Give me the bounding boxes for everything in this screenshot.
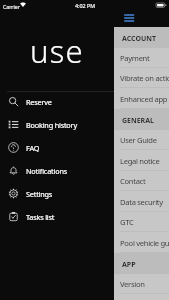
- staticText: APP: [122, 260, 136, 270]
- button[interactable]: Vibrate on action: [114, 68, 169, 88]
- staticText: Booking history: [26, 120, 77, 130]
- staticText: Carrier: [3, 3, 20, 10]
- staticText: Payment: [120, 53, 150, 63]
- staticText: Tasks list: [26, 212, 55, 222]
- staticText: FAQ: [26, 143, 40, 153]
- button[interactable]: Contact: [114, 171, 169, 191]
- staticText: Version: [120, 279, 145, 289]
- staticText: GTC: [120, 217, 134, 227]
- staticText: Contact: [120, 176, 146, 186]
- staticText: User Guide: [120, 135, 157, 145]
- button[interactable]: GTC: [114, 212, 169, 232]
- button[interactable]: Version: [114, 274, 169, 294]
- staticText: Reserve: [26, 97, 52, 107]
- button[interactable]: Enhanced app security: [114, 88, 169, 109]
- staticText: ACCOUNT: [122, 34, 156, 44]
- staticText: use: [30, 30, 84, 72]
- staticText: Settings: [26, 189, 53, 199]
- staticText: Enhanced app security: [120, 94, 169, 104]
- button[interactable]: Notifications: [0, 159, 114, 182]
- staticText: Data security: [120, 197, 163, 207]
- staticText: Vibrate on action: [120, 73, 169, 83]
- button[interactable]: Legal notice: [114, 150, 169, 171]
- staticText: Pool vehicle guide: [120, 238, 169, 248]
- button[interactable]: Settings: [0, 182, 114, 205]
- button[interactable]: FAQ: [0, 136, 114, 159]
- staticText: Notifications: [26, 166, 68, 176]
- staticText: 4:02 PM: [75, 2, 96, 9]
- button[interactable]: Tasks list: [0, 205, 114, 228]
- button[interactable]: Booking history: [0, 113, 114, 136]
- button[interactable]: User Guide: [114, 130, 169, 150]
- button[interactable]: Payment: [114, 48, 169, 68]
- button[interactable]: Data security: [114, 191, 169, 212]
- button[interactable]: Reserve: [0, 90, 114, 113]
- button[interactable]: Pool vehicle guide: [114, 232, 169, 253]
- staticText: GENERAL: [122, 116, 154, 126]
- button[interactable]: Open navigation menu: [121, 10, 137, 25]
- staticText: Legal notice: [120, 156, 160, 166]
